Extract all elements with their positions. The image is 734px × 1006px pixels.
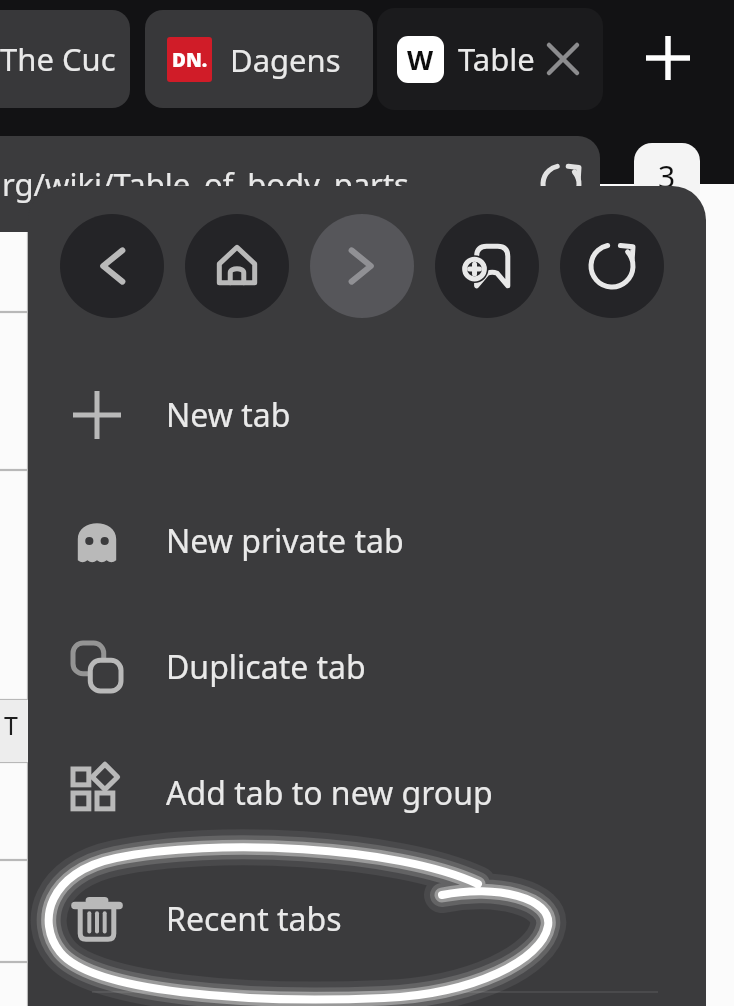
staticText: T — [4, 708, 18, 742]
button[interactable]: Forward — [310, 214, 414, 318]
staticText: Add tab to new group — [166, 771, 493, 815]
button[interactable]: New private tab — [28, 478, 706, 604]
button[interactable]: Add bookmark — [435, 214, 539, 318]
button[interactable]: New tab — [632, 22, 704, 94]
button[interactable]: Open tabs — [634, 143, 700, 209]
button[interactable]: Reload page — [532, 155, 590, 213]
button[interactable]: DN. — [145, 10, 373, 108]
staticText: 3 — [658, 156, 676, 197]
staticText: rg/wiki/Table_of_body_parts — [2, 163, 409, 205]
staticText: Recent tabs — [166, 897, 342, 941]
staticText: New private tab — [166, 519, 404, 563]
button[interactable]: Recent tabs — [28, 856, 706, 982]
button[interactable]: W — [377, 8, 603, 110]
staticText: The Cuc — [0, 38, 116, 80]
button[interactable]: Reload — [560, 214, 664, 318]
staticText: Dagens — [230, 39, 341, 81]
button[interactable]: Add tab to new group — [28, 730, 706, 856]
button[interactable]: The Cuc — [0, 10, 130, 108]
button[interactable]: Back — [60, 214, 164, 318]
staticText: Duplicate tab — [166, 645, 366, 689]
button[interactable]: Close tab — [539, 35, 587, 83]
staticText: W — [407, 41, 434, 78]
button[interactable]: rg/wiki/Table_of_body_parts — [0, 136, 600, 232]
button[interactable]: New tab — [28, 352, 706, 478]
button[interactable]: Duplicate tab — [28, 604, 706, 730]
button[interactable]: Home — [185, 214, 289, 318]
staticText: DN. — [172, 47, 208, 73]
staticText: Table — [458, 38, 535, 80]
staticText: New tab — [166, 393, 291, 437]
